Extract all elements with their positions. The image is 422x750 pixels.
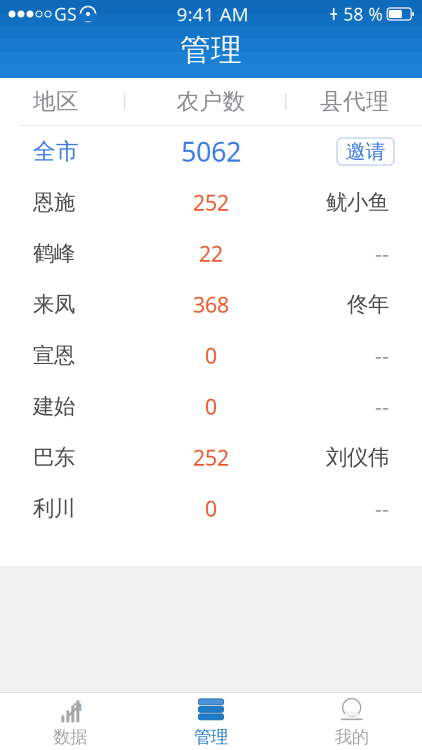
button[interactable]: 利川 — [0, 483, 422, 534]
staticText: 利川 — [33, 495, 75, 522]
staticText: 0 — [205, 341, 217, 370]
staticText: 58 % — [343, 2, 382, 25]
staticText: 邀请 — [345, 139, 385, 164]
staticText: 9:41 AM — [177, 2, 249, 26]
staticText: 5062 — [181, 134, 241, 169]
staticText: -- — [375, 392, 389, 421]
staticText: 数据 — [53, 726, 87, 748]
staticText: 368 — [193, 290, 229, 319]
button[interactable]: ↗ — [0, 693, 141, 750]
button[interactable]: 全市 — [0, 130, 79, 173]
staticText: 农户数 — [176, 88, 245, 115]
button[interactable]: 邀请 — [337, 138, 394, 165]
staticText: 恩施 — [33, 189, 75, 216]
button[interactable]: 恩施 — [0, 177, 422, 228]
staticText: 刘仪伟 — [326, 444, 389, 471]
button[interactable]: 管理 — [141, 693, 281, 750]
staticText: 全市 — [33, 138, 79, 165]
staticText: 252 — [193, 443, 229, 472]
staticText: -- — [375, 341, 389, 370]
staticText: 我的 — [335, 726, 369, 748]
staticText: 巴东 — [33, 444, 75, 471]
button[interactable]: 我的 — [281, 693, 422, 750]
button[interactable]: 鹤峰 — [0, 228, 422, 279]
staticText: 252 — [193, 188, 229, 217]
staticText: 管理 — [194, 726, 228, 748]
staticText: 地区 — [33, 88, 79, 115]
staticText: 鹤峰 — [33, 240, 75, 267]
button[interactable]: 来凤 — [0, 279, 422, 330]
staticText: 22 — [199, 239, 223, 268]
staticText: GS — [54, 2, 77, 25]
staticText: 鱿小鱼 — [326, 189, 389, 216]
staticText: 佟年 — [347, 291, 389, 318]
staticText: ↗ — [63, 695, 84, 724]
staticText: 0 — [205, 392, 217, 421]
staticText: 宣恩 — [33, 342, 75, 369]
button[interactable]: 建始 — [0, 381, 422, 432]
staticText: -- — [375, 239, 389, 268]
staticText: 县代理 — [320, 88, 389, 115]
button[interactable]: 宣恩 — [0, 330, 422, 381]
staticText: 0 — [205, 494, 217, 523]
staticText: 来凤 — [33, 291, 75, 318]
button[interactable]: 巴东 — [0, 432, 422, 483]
staticText: -- — [375, 494, 389, 523]
staticText: 管理 — [180, 31, 242, 69]
staticText: 建始 — [33, 393, 75, 420]
